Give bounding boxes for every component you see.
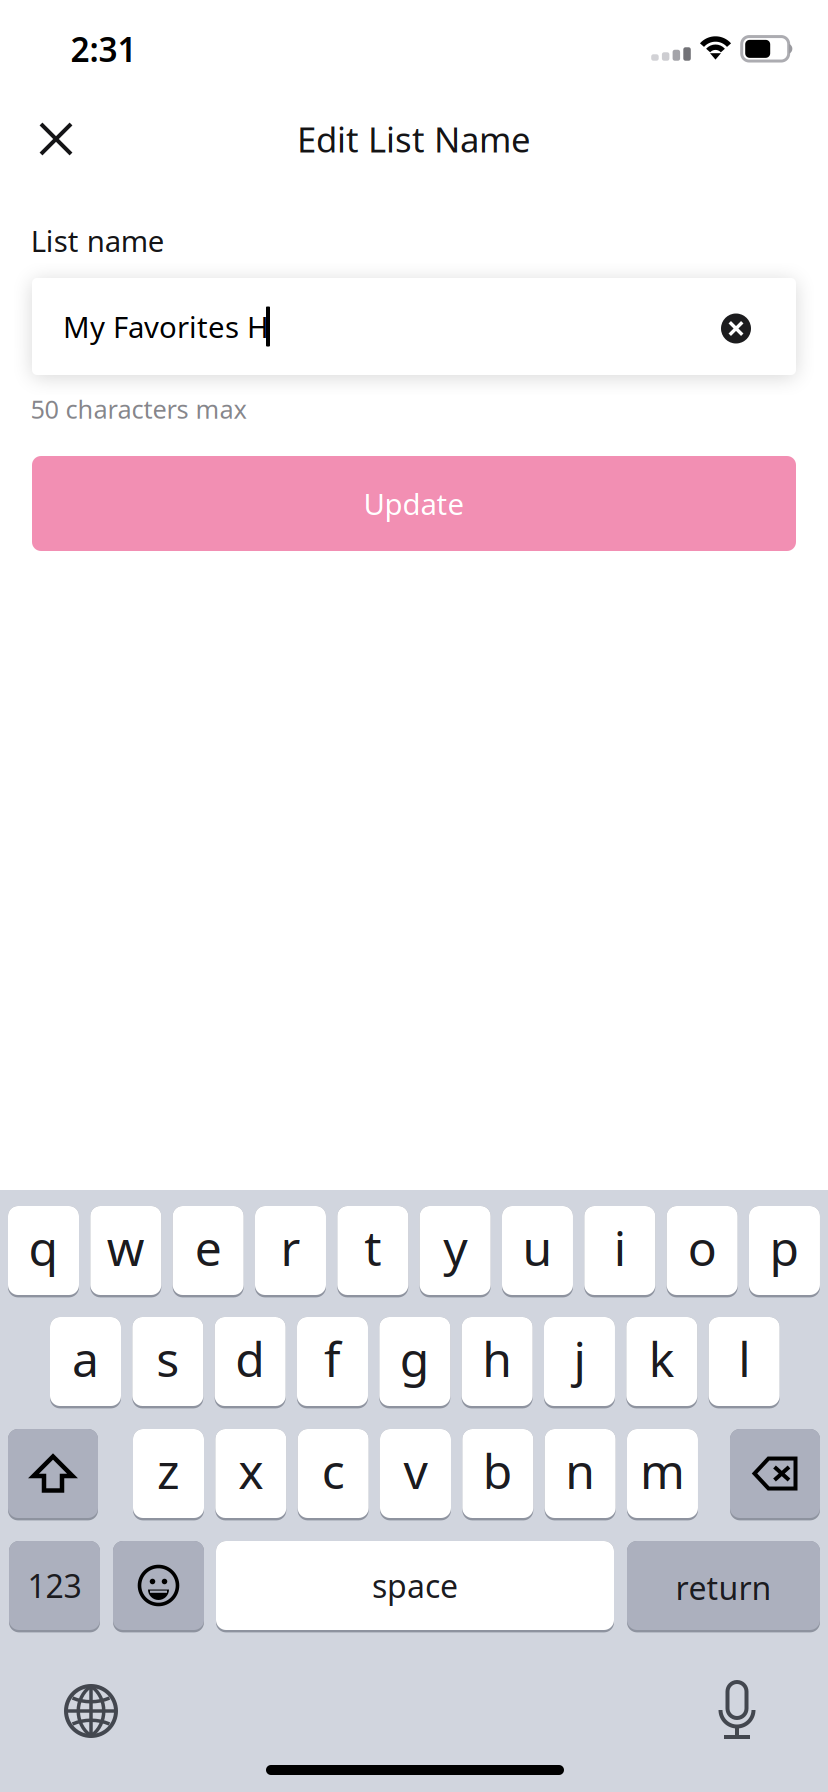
staticText: l xyxy=(738,1327,750,1390)
button[interactable]: y xyxy=(420,1206,491,1295)
button[interactable]: l xyxy=(709,1317,780,1406)
button[interactable]: u xyxy=(502,1206,573,1295)
button[interactable]: Next keyboard xyxy=(47,1667,135,1755)
button[interactable]: x xyxy=(215,1429,286,1518)
staticText: k xyxy=(649,1327,675,1390)
button[interactable]: My Favorites H xyxy=(32,278,796,375)
staticText: v xyxy=(403,1439,427,1502)
staticText: g xyxy=(400,1327,430,1390)
staticText: 2:31 xyxy=(70,27,136,71)
staticText: List name xyxy=(31,221,165,260)
staticText: t xyxy=(364,1216,381,1279)
button[interactable]: j xyxy=(544,1317,615,1406)
staticText: h xyxy=(482,1327,512,1390)
staticText: i xyxy=(614,1216,626,1279)
button[interactable]: f xyxy=(297,1317,368,1406)
staticText: p xyxy=(769,1216,799,1279)
button[interactable]: Emoji xyxy=(113,1541,204,1630)
button[interactable]: r xyxy=(255,1206,326,1295)
staticText: e xyxy=(195,1216,222,1279)
staticText: u xyxy=(522,1216,552,1279)
button[interactable]: space xyxy=(216,1541,614,1630)
button[interactable]: t xyxy=(337,1206,408,1295)
staticText: r xyxy=(280,1216,300,1279)
button[interactable]: w xyxy=(90,1206,161,1295)
staticText: d xyxy=(235,1327,265,1390)
button[interactable]: q xyxy=(8,1206,79,1295)
staticText: My Favorites H xyxy=(63,307,269,346)
staticText: f xyxy=(324,1327,341,1390)
button[interactable]: m xyxy=(627,1429,698,1518)
staticText: o xyxy=(688,1216,717,1279)
staticText: return xyxy=(675,1566,771,1609)
button[interactable]: b xyxy=(462,1429,533,1518)
staticText: space xyxy=(372,1564,458,1607)
staticText: Edit List Name xyxy=(297,116,531,162)
button[interactable]: a xyxy=(50,1317,121,1406)
button[interactable]: i xyxy=(584,1206,655,1295)
button[interactable]: p xyxy=(749,1206,820,1295)
button[interactable]: o xyxy=(667,1206,738,1295)
button[interactable]: n xyxy=(545,1429,616,1518)
button[interactable]: h xyxy=(462,1317,533,1406)
staticText: n xyxy=(565,1439,595,1502)
staticText: w xyxy=(107,1216,145,1279)
button[interactable]: 123 xyxy=(9,1541,100,1630)
button[interactable]: Delete xyxy=(730,1429,820,1518)
staticText: q xyxy=(28,1216,58,1279)
staticText: c xyxy=(322,1439,345,1502)
staticText: y xyxy=(443,1216,467,1279)
staticText: 123 xyxy=(27,1564,81,1607)
button[interactable]: Update xyxy=(32,456,796,551)
button[interactable]: Shift xyxy=(8,1429,98,1518)
staticText: a xyxy=(72,1327,99,1390)
button[interactable]: Dictation xyxy=(693,1665,781,1753)
button[interactable]: v xyxy=(380,1429,451,1518)
staticText: Update xyxy=(363,484,464,523)
button[interactable]: s xyxy=(132,1317,203,1406)
button[interactable]: Close xyxy=(18,101,94,177)
button[interactable]: z xyxy=(133,1429,204,1518)
staticText: z xyxy=(157,1439,180,1502)
staticText: s xyxy=(156,1327,179,1390)
button[interactable]: d xyxy=(215,1317,286,1406)
button[interactable]: c xyxy=(298,1429,369,1518)
staticText: j xyxy=(573,1327,585,1390)
staticText: b xyxy=(483,1439,513,1502)
button[interactable]: g xyxy=(379,1317,450,1406)
button[interactable]: return xyxy=(627,1541,820,1630)
staticText: x xyxy=(238,1439,263,1502)
button[interactable]: k xyxy=(626,1317,697,1406)
staticText: m xyxy=(640,1439,685,1502)
button[interactable]: e xyxy=(173,1206,244,1295)
button[interactable]: Clear text xyxy=(708,300,764,356)
staticText: 50 characters max xyxy=(30,392,246,426)
